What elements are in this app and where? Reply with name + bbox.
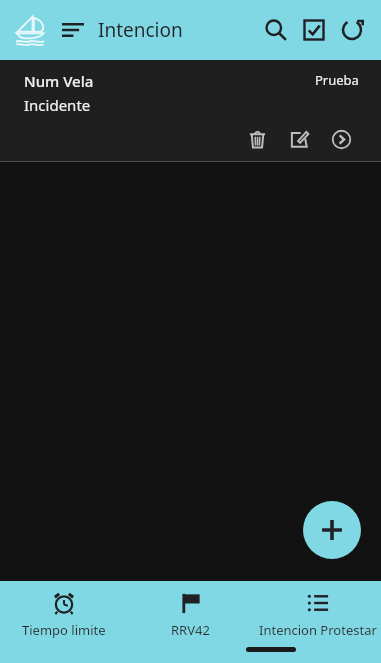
button[interactable]: Tiempo limite bbox=[0, 585, 127, 645]
staticText: Tiempo limite bbox=[22, 621, 106, 639]
staticText: RRV42 bbox=[171, 621, 210, 639]
button[interactable]: Num Vela bbox=[0, 60, 381, 161]
staticText: Incidente bbox=[24, 95, 91, 115]
staticText: Prueba bbox=[315, 71, 359, 89]
button[interactable]: RRV42 bbox=[127, 585, 254, 645]
button[interactable]: Delete bbox=[239, 121, 275, 157]
button[interactable]: Search bbox=[257, 11, 295, 49]
button[interactable]: App logo bbox=[10, 10, 50, 50]
button[interactable]: Add bbox=[303, 501, 361, 559]
button[interactable]: Intencion Protestar bbox=[254, 585, 381, 645]
button[interactable]: Refresh bbox=[333, 11, 371, 49]
staticText: Num Vela bbox=[24, 71, 94, 91]
staticText: Intencion Protestar bbox=[98, 17, 255, 43]
button[interactable]: Select all bbox=[295, 11, 333, 49]
button[interactable]: Open details bbox=[323, 121, 359, 157]
button[interactable]: Sort bbox=[56, 13, 90, 47]
staticText: Intencion Protestar bbox=[259, 621, 377, 639]
button[interactable]: Edit bbox=[281, 121, 317, 157]
